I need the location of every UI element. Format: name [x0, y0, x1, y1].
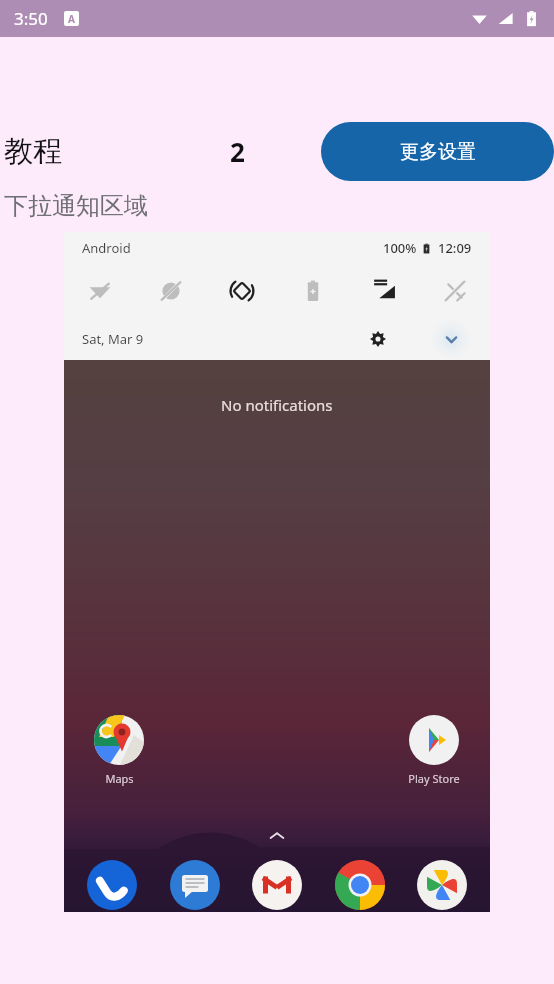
- button[interactable]: Settings: [364, 325, 392, 353]
- button[interactable]: Quick setting: [135, 264, 206, 318]
- button[interactable]: Photos: [416, 860, 468, 912]
- button[interactable]: Maps: [94, 715, 144, 786]
- staticText: 2: [230, 134, 245, 169]
- button[interactable]: Quick setting: [277, 264, 348, 318]
- button[interactable]: 更多设置: [321, 122, 554, 181]
- staticText: Android: [82, 239, 131, 257]
- button[interactable]: Phone: [86, 860, 138, 912]
- button[interactable]: Play Store: [408, 715, 460, 786]
- button[interactable]: Quick setting: [348, 264, 419, 318]
- staticText: 下拉通知区域: [4, 191, 148, 221]
- staticText: Play Store: [408, 771, 460, 786]
- button[interactable]: Chrome: [334, 860, 386, 912]
- staticText: A: [68, 12, 75, 26]
- button[interactable]: Quick setting: [206, 264, 277, 318]
- staticText: 12:09: [438, 239, 472, 257]
- staticText: No notifications: [221, 395, 333, 415]
- staticText: 教程: [4, 133, 62, 170]
- button[interactable]: Expand: [430, 318, 472, 360]
- button[interactable]: Quick setting: [64, 264, 135, 318]
- button[interactable]: Gmail: [251, 860, 303, 912]
- button[interactable]: Quick setting: [419, 264, 490, 318]
- button[interactable]: Messages: [169, 860, 221, 912]
- staticText: 更多设置: [400, 140, 476, 164]
- staticText: 100%: [383, 239, 417, 257]
- staticText: Maps: [105, 771, 134, 786]
- staticText: Sat, Mar 9: [82, 330, 144, 348]
- staticText: 3:50: [14, 7, 48, 30]
